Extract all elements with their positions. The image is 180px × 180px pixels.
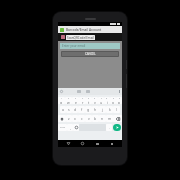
button[interactable]: Home xyxy=(78,140,87,147)
staticText: i xyxy=(107,100,108,104)
button[interactable]: v xyxy=(85,115,92,122)
staticText: ScanQRCode/Email xyxy=(67,36,94,40)
button[interactable]: 0 xyxy=(116,97,122,104)
button[interactable]: f xyxy=(78,106,85,113)
button[interactable]: Barcode/Email Account xyxy=(58,26,122,33)
staticText: h xyxy=(94,107,97,112)
button[interactable]: m xyxy=(106,115,113,122)
button[interactable]: ?123 xyxy=(58,124,67,131)
button[interactable]: b xyxy=(92,115,99,122)
button[interactable]: n xyxy=(99,115,106,122)
button[interactable]: k xyxy=(106,106,113,113)
staticText: 8 xyxy=(106,97,108,100)
staticText: s xyxy=(68,107,70,112)
staticText: CANCEL xyxy=(85,52,96,56)
button[interactable]: s xyxy=(66,106,72,113)
button[interactable]: . xyxy=(106,124,112,131)
button[interactable]: z xyxy=(66,115,72,122)
button[interactable]: Emoji xyxy=(73,124,79,131)
staticText: p xyxy=(118,100,121,104)
button[interactable]: CANCEL xyxy=(61,51,119,57)
staticText: q xyxy=(60,100,63,104)
button[interactable]: Back xyxy=(64,140,73,147)
staticText: l xyxy=(116,107,117,112)
button[interactable]: Send xyxy=(113,124,121,131)
button[interactable]: g xyxy=(85,106,92,113)
button[interactable]: x xyxy=(72,115,78,122)
staticText: c xyxy=(81,116,83,121)
staticText: 5 xyxy=(88,97,90,100)
staticText: b xyxy=(94,116,97,121)
button[interactable]: Keyboard xyxy=(107,140,116,147)
staticText: 6 xyxy=(94,97,96,100)
button[interactable]: Shift xyxy=(58,115,66,122)
button[interactable]: 9 xyxy=(110,97,116,104)
staticText: 9 xyxy=(113,97,115,100)
staticText: n xyxy=(101,116,104,121)
button[interactable]: Backspace xyxy=(113,115,122,122)
staticText: v xyxy=(88,116,90,121)
button[interactable]: a xyxy=(60,106,66,113)
staticText: 3 xyxy=(75,97,77,100)
staticText: 1 xyxy=(61,97,63,100)
staticText: j xyxy=(102,107,103,112)
staticText: 7 xyxy=(101,97,103,100)
staticText: u xyxy=(100,100,103,104)
staticText: m xyxy=(108,116,112,121)
button[interactable]: 6 xyxy=(92,97,98,104)
staticText: ?123 xyxy=(60,126,65,129)
button[interactable]: j xyxy=(99,106,106,113)
button[interactable]: Recent apps xyxy=(93,140,102,147)
staticText: , xyxy=(70,126,71,130)
staticText: f xyxy=(81,107,83,112)
button[interactable]: 2 xyxy=(65,97,72,104)
staticText: 0 xyxy=(119,97,121,100)
staticText: e xyxy=(75,100,77,104)
staticText: x xyxy=(74,116,76,121)
button[interactable]: h xyxy=(92,106,99,113)
staticText: g xyxy=(87,107,90,112)
staticText: d xyxy=(74,107,77,112)
staticText: Enter your email xyxy=(62,44,86,48)
staticText: y xyxy=(94,100,96,104)
button[interactable]: l xyxy=(113,106,120,113)
staticText: o xyxy=(112,100,115,104)
staticText: t xyxy=(88,100,90,104)
button[interactable]: ScanQRCode/Email xyxy=(58,33,122,41)
staticText: 2 xyxy=(68,97,70,100)
button[interactable]: Enter your email xyxy=(60,43,120,49)
button[interactable]: 1 xyxy=(58,97,65,104)
staticText: Barcode/Email Account xyxy=(66,28,102,32)
button[interactable]: c xyxy=(78,115,85,122)
button[interactable]: 7 xyxy=(98,97,104,104)
staticText: 4 xyxy=(82,97,84,100)
staticText: . xyxy=(109,126,110,130)
staticText: w xyxy=(67,100,70,104)
staticText: k xyxy=(109,107,111,112)
staticText: r xyxy=(82,100,84,104)
button[interactable]: 3 xyxy=(72,97,79,104)
button[interactable]: 5 xyxy=(86,97,92,104)
button[interactable]: 8 xyxy=(104,97,110,104)
staticText: a xyxy=(62,107,64,112)
staticText: z xyxy=(68,116,70,121)
button[interactable]: d xyxy=(72,106,78,113)
button[interactable]: Google xyxy=(60,90,63,93)
button[interactable]: , xyxy=(67,124,73,131)
button[interactable]: 4 xyxy=(79,97,86,104)
